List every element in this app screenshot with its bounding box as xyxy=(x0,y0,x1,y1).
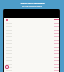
button[interactable] xyxy=(4,32,59,35)
button[interactable] xyxy=(4,35,59,38)
button[interactable] xyxy=(4,69,59,72)
staticText: in one simple place xyxy=(22,5,42,8)
button[interactable] xyxy=(4,63,59,66)
button[interactable]: Add transaction xyxy=(5,65,9,69)
button[interactable] xyxy=(4,25,59,28)
button[interactable] xyxy=(4,56,59,59)
button[interactable] xyxy=(4,46,59,49)
button[interactable] xyxy=(4,42,59,45)
button[interactable] xyxy=(4,29,59,32)
button[interactable] xyxy=(4,49,59,52)
button[interactable] xyxy=(4,18,59,21)
button[interactable] xyxy=(4,66,59,69)
button[interactable] xyxy=(4,39,59,42)
button[interactable] xyxy=(4,22,59,25)
staticText: Track your spending xyxy=(20,1,45,4)
button[interactable] xyxy=(4,52,59,55)
button[interactable] xyxy=(4,59,59,62)
